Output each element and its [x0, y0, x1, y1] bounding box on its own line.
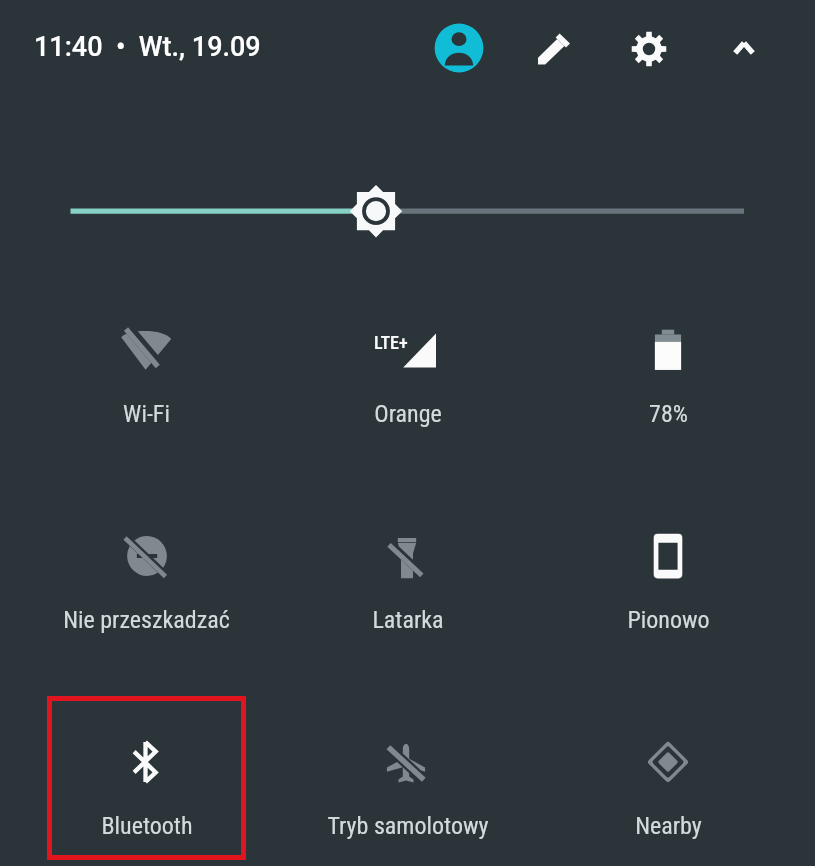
button[interactable]: Nie przeszkadzać [16, 480, 277, 680]
staticText: Wi-Fi [123, 400, 170, 428]
button[interactable]: Wi-Fi [16, 273, 277, 473]
staticText: Tryb samolotowy [327, 812, 489, 840]
staticText: Orange [374, 400, 442, 428]
button[interactable]: Brightness [0, 181, 815, 241]
button[interactable]: Orange [277, 273, 538, 473]
button[interactable]: Edit [524, 19, 584, 79]
button[interactable]: Latarka [277, 480, 538, 680]
button[interactable]: Tryb samolotowy [277, 686, 538, 866]
button[interactable]: 78% [538, 273, 799, 473]
staticText: Latarka [372, 606, 444, 634]
button[interactable]: Pionowo [538, 480, 799, 680]
staticText: LTE+ [374, 332, 408, 353]
button[interactable]: Collapse [714, 18, 774, 78]
button[interactable]: Account [429, 18, 489, 78]
button[interactable]: Nearby [538, 686, 799, 866]
button[interactable]: Settings [619, 19, 679, 79]
button[interactable]: Bluetooth [16, 686, 277, 866]
staticText: 78% [649, 400, 688, 428]
staticText: Pionowo [627, 606, 710, 634]
staticText: Bluetooth [101, 812, 193, 840]
staticText: Nearby [635, 812, 702, 840]
staticText: Nie przeszkadzać [63, 606, 230, 634]
staticText: 11:40 • Wt., 19.09 [34, 31, 261, 63]
